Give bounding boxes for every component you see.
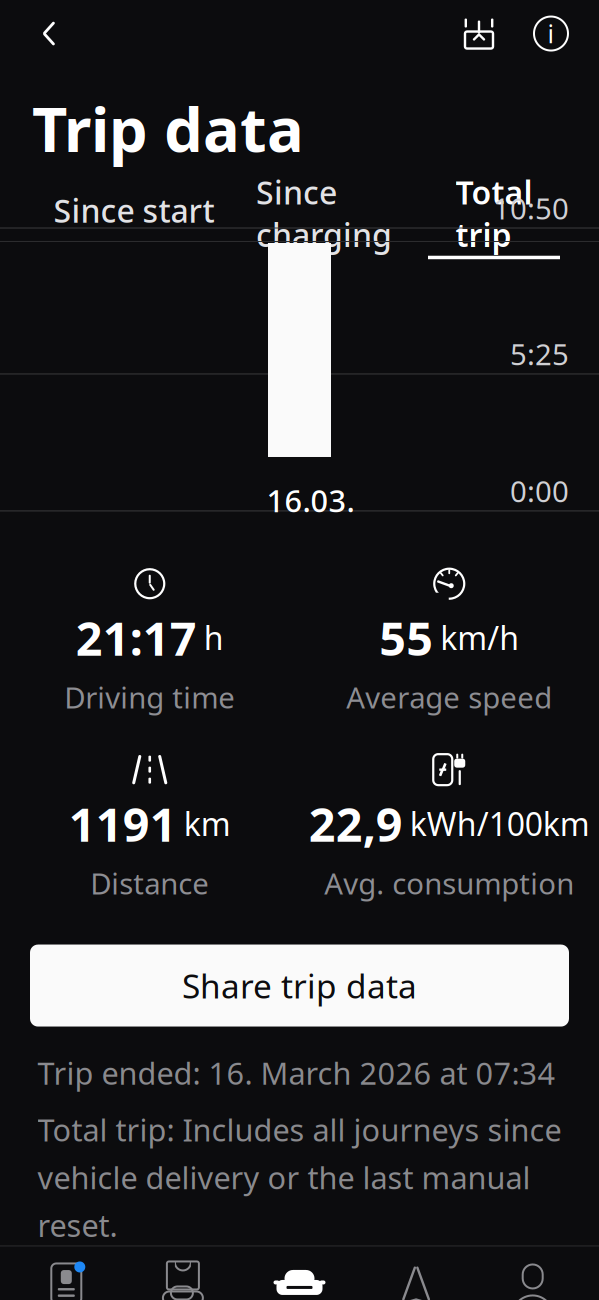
button[interactable]: News	[8, 1246, 125, 1300]
button[interactable]: Total trip	[428, 183, 560, 241]
button[interactable]: My car	[241, 1246, 358, 1300]
staticText: 0:00	[510, 471, 569, 510]
staticText: Average speed	[346, 678, 552, 717]
button[interactable]: Information	[529, 11, 573, 55]
staticText: Share trip data	[182, 963, 417, 1008]
staticText: i	[547, 17, 554, 50]
staticText: Trip ended: 16. March 2026 at 07:34	[37, 1053, 555, 1093]
staticText: Total trip: Includes all journeys since …	[37, 1109, 561, 1245]
staticText: h	[204, 616, 224, 659]
button[interactable]: Since start	[48, 183, 220, 241]
button[interactable]: Navigation	[358, 1246, 474, 1300]
staticText: Total trip	[455, 171, 532, 256]
staticText: Since start	[53, 189, 214, 231]
button[interactable]: Profile	[474, 1246, 591, 1300]
staticText: Avg. consumption	[324, 864, 574, 903]
staticText: 55	[379, 607, 433, 669]
staticText: km	[184, 802, 231, 845]
staticText: Trip data	[32, 87, 304, 169]
staticText: Driving time	[64, 678, 235, 717]
button[interactable]: Save trip data	[457, 11, 501, 55]
staticText: 16.03.	[266, 480, 354, 521]
staticText: 5:25	[510, 334, 569, 373]
staticText: Since charging	[256, 171, 392, 256]
staticText: 1191	[69, 793, 177, 855]
button[interactable]: Share trip data	[30, 945, 569, 1027]
button[interactable]: Since charging	[220, 183, 428, 241]
button[interactable]: Shop	[125, 1246, 241, 1300]
staticText: 21:17	[76, 607, 197, 669]
staticText: kWh/100km	[410, 802, 590, 845]
staticText: 10:50	[493, 189, 569, 228]
staticText: Distance	[90, 864, 209, 903]
staticText: 22,9	[309, 793, 403, 855]
staticText: km/h	[440, 616, 519, 659]
button[interactable]: Back	[26, 10, 72, 56]
